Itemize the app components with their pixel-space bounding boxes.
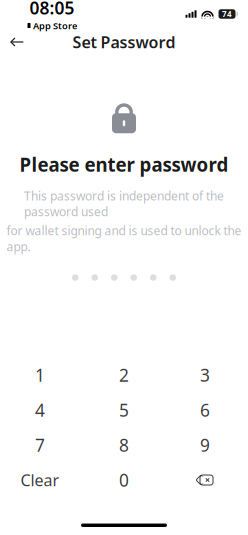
staticText: 08:05 bbox=[29, 0, 74, 19]
button[interactable]: 7 bbox=[1, 427, 79, 462]
button[interactable]: Delete bbox=[166, 462, 244, 497]
button[interactable]: Clear bbox=[1, 462, 79, 497]
staticText: 7 bbox=[35, 433, 45, 456]
staticText: App Store bbox=[33, 19, 77, 32]
staticText: This password is independent of the pass… bbox=[24, 188, 224, 220]
button[interactable]: 2 bbox=[85, 357, 163, 392]
staticText: 74 bbox=[222, 9, 232, 19]
staticText: 0 bbox=[119, 468, 129, 491]
staticText: 2 bbox=[119, 363, 129, 386]
staticText: 6 bbox=[200, 398, 210, 421]
button[interactable]: 4 bbox=[1, 392, 79, 427]
button[interactable]: 8 bbox=[85, 427, 163, 462]
button[interactable]: 5 bbox=[85, 392, 163, 427]
staticText: 8 bbox=[119, 433, 129, 456]
button[interactable]: 6 bbox=[166, 392, 244, 427]
button[interactable]: 3 bbox=[166, 357, 244, 392]
staticText: for wallet signing and is used to unlock… bbox=[6, 223, 241, 255]
staticText: Set Password bbox=[72, 31, 175, 53]
staticText: 9 bbox=[200, 433, 210, 456]
staticText: Clear bbox=[20, 469, 59, 491]
staticText: 1 bbox=[35, 363, 45, 386]
staticText: Please enter password bbox=[19, 152, 228, 177]
staticText: 4 bbox=[35, 398, 45, 421]
button[interactable]: 0 bbox=[85, 462, 163, 497]
button[interactable]: 1 bbox=[1, 357, 79, 392]
staticText: 3 bbox=[200, 363, 210, 386]
button[interactable]: Back bbox=[0, 28, 34, 56]
staticText: 5 bbox=[119, 398, 129, 421]
button[interactable]: 9 bbox=[166, 427, 244, 462]
